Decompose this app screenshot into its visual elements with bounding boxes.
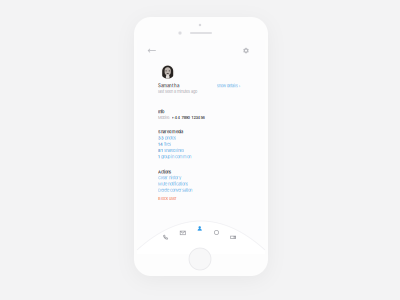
staticText: show details › — [217, 83, 241, 88]
staticText: shared links — [164, 148, 184, 153]
button[interactable]: Mute notifications — [158, 182, 188, 186]
staticText: Block user — [158, 196, 177, 201]
button[interactable]: Wallet — [226, 231, 240, 243]
staticText: Info — [158, 109, 164, 114]
button[interactable]: Back — [146, 45, 158, 56]
button[interactable]: Calls — [158, 231, 172, 243]
staticText: 81 — [158, 148, 163, 153]
button[interactable]: Block user — [158, 196, 177, 201]
staticText: Actions — [158, 169, 171, 174]
staticText: +44 7890 123456 — [171, 115, 204, 120]
staticText: last seen 8 minutes ago — [158, 89, 197, 94]
staticText: Mobile: — [158, 115, 170, 120]
staticText: files — [164, 142, 171, 147]
staticText: Mute notifications — [158, 182, 188, 186]
button[interactable]: Settings — [241, 45, 251, 56]
button[interactable]: Contacts — [193, 222, 207, 234]
button[interactable]: 81 — [158, 148, 184, 153]
staticText: Clear history — [158, 175, 181, 180]
staticText: Samantha — [158, 83, 179, 88]
staticText: photos — [165, 136, 176, 140]
staticText: group in common — [161, 154, 191, 159]
staticText: 14 — [158, 142, 163, 147]
button[interactable]: 33 — [158, 136, 176, 140]
staticText: 1 — [158, 154, 160, 159]
staticText: Delete conversation — [158, 188, 192, 193]
button[interactable]: show details › — [217, 83, 241, 88]
button[interactable]: Messages — [176, 227, 190, 239]
button[interactable]: Delete conversation — [158, 188, 192, 193]
button[interactable]: Clear history — [158, 175, 181, 180]
staticText: Shared media — [158, 129, 183, 134]
button[interactable]: Discover — [209, 226, 223, 238]
staticText: 33 — [158, 136, 164, 140]
button[interactable]: 1 — [158, 154, 191, 159]
button[interactable]: 14 — [158, 142, 171, 147]
